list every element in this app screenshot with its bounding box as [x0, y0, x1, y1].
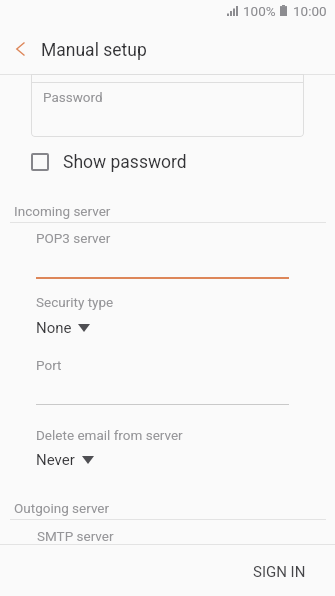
- staticText: Port: [36, 357, 62, 373]
- button[interactable]: Security type: [36, 294, 289, 340]
- staticText: Manual setup: [41, 40, 147, 61]
- button[interactable]: POP3 server: [36, 229, 289, 279]
- staticText: Incoming server: [14, 203, 111, 219]
- staticText: SMTP server: [37, 528, 114, 544]
- staticText: 10:00: [293, 3, 327, 19]
- staticText: SIGN IN: [253, 563, 306, 581]
- button[interactable]: Delete email from server: [36, 427, 289, 473]
- staticText: POP3 server: [36, 230, 111, 246]
- button[interactable]: Port: [36, 357, 289, 405]
- button[interactable]: SIGN IN: [239, 553, 320, 591]
- staticText: Delete email from server: [36, 427, 183, 443]
- staticText: Outgoing server: [14, 500, 110, 516]
- staticText: 100%: [243, 3, 276, 19]
- staticText: Password: [43, 89, 103, 105]
- button[interactable]: Navigate up: [4, 33, 36, 65]
- button[interactable]: Show password: [25, 145, 187, 179]
- staticText: Show password: [63, 152, 187, 173]
- staticText: Security type: [36, 294, 114, 310]
- staticText: None: [36, 319, 72, 337]
- staticText: Never: [36, 451, 75, 469]
- button[interactable]: Password: [31, 82, 304, 137]
